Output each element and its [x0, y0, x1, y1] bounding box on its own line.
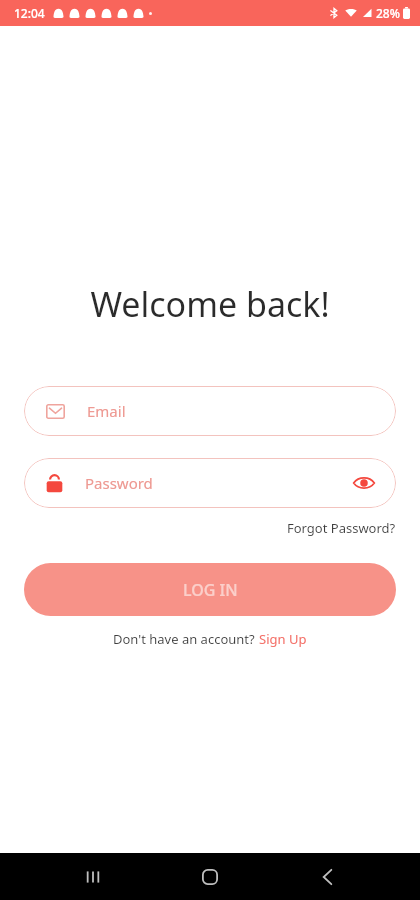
button[interactable]: Password	[24, 458, 396, 508]
button[interactable]: LOG IN	[24, 563, 396, 616]
button[interactable]: Home	[186, 853, 234, 900]
staticText: Email	[87, 401, 126, 421]
staticText: 28%	[376, 5, 400, 21]
staticText: LOG IN	[183, 579, 238, 601]
button[interactable]: Show password	[350, 469, 378, 497]
button[interactable]: Recent apps	[69, 853, 117, 900]
staticText: 12:04	[14, 5, 45, 21]
button[interactable]: Back	[303, 853, 351, 900]
button[interactable]: Email	[24, 386, 396, 436]
staticText: Welcome back!	[0, 281, 420, 327]
button[interactable]: Forgot Password?	[287, 517, 396, 539]
button[interactable]: Sign Up	[259, 630, 307, 648]
staticText: Password	[85, 473, 350, 493]
staticText: Don't have an account?	[113, 630, 259, 648]
